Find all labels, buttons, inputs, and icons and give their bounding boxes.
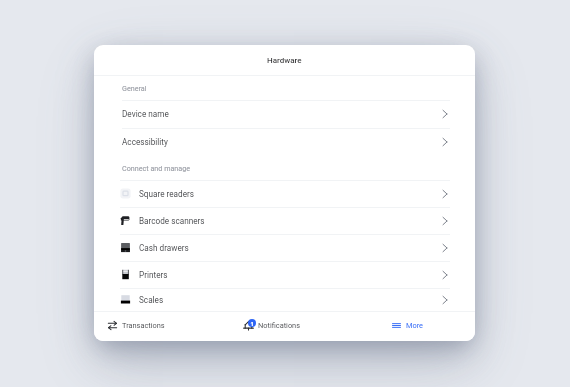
staticText: Notifications [258, 321, 301, 330]
staticText: Barcode scanners [139, 216, 205, 226]
staticText: Printers [139, 270, 168, 280]
button[interactable]: Square readers [94, 180, 475, 207]
other: Transactions [107, 320, 118, 331]
other: More [391, 320, 402, 331]
staticText: More [406, 321, 424, 330]
staticText: Accessibility [122, 137, 168, 147]
button[interactable]: Device name [94, 100, 475, 127]
staticText: 1 [250, 320, 254, 327]
staticText: General [122, 84, 147, 92]
staticText: Transactions [122, 321, 165, 330]
button[interactable]: Scales [94, 288, 475, 311]
button[interactable]: Barcode scanners [94, 207, 475, 234]
button[interactable]: Accessibility [94, 128, 475, 155]
staticText: Connect and manage [122, 164, 191, 172]
staticText: Scales [139, 295, 164, 305]
button[interactable]: Transactions [106, 311, 166, 340]
staticText: Square readers [139, 189, 195, 199]
button[interactable]: Notifications [242, 311, 302, 340]
staticText: Cash drawers [139, 243, 189, 253]
button[interactable]: More [390, 311, 425, 340]
other: Notifications [243, 320, 254, 331]
button[interactable]: Printers [94, 261, 475, 288]
staticText: Hardware [267, 56, 302, 65]
button[interactable]: Cash drawers [94, 234, 475, 261]
staticText: Device name [122, 109, 169, 119]
